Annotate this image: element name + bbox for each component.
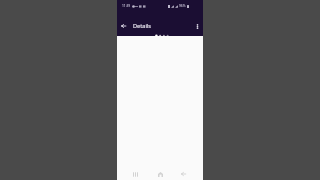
staticText: 11:39 <box>122 4 131 8</box>
staticText: Details <box>133 22 151 30</box>
button[interactable]: More options <box>191 20 203 32</box>
button[interactable]: Home <box>154 168 166 180</box>
button[interactable]: Navigate up <box>117 20 129 32</box>
button[interactable]: Back <box>177 168 189 180</box>
staticText: 96% <box>179 4 186 8</box>
button[interactable]: Recent apps <box>129 168 141 180</box>
